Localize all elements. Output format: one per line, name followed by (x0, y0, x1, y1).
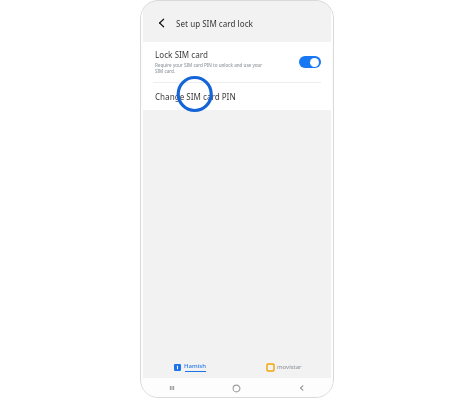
button[interactable]: Hamish (143, 356, 237, 378)
button[interactable]: Recent apps (140, 378, 204, 398)
staticText: Lock SIM card (155, 49, 208, 60)
button[interactable]: Home (204, 378, 269, 398)
staticText: Set up SIM card lock (176, 18, 254, 29)
button[interactable]: Lock SIM card (143, 42, 331, 82)
staticText: movistar (277, 363, 302, 371)
button[interactable]: movistar (237, 356, 331, 378)
button[interactable]: Change SIM card PIN (143, 83, 331, 110)
staticText: Require your SIM card PIN to unlock and … (155, 62, 263, 75)
button[interactable]: Lock SIM card toggle (299, 56, 321, 68)
staticText: Change SIM card PIN (155, 91, 236, 102)
button[interactable]: Back (154, 15, 170, 31)
staticText: Hamish (184, 362, 206, 370)
button[interactable]: Back (269, 378, 334, 398)
